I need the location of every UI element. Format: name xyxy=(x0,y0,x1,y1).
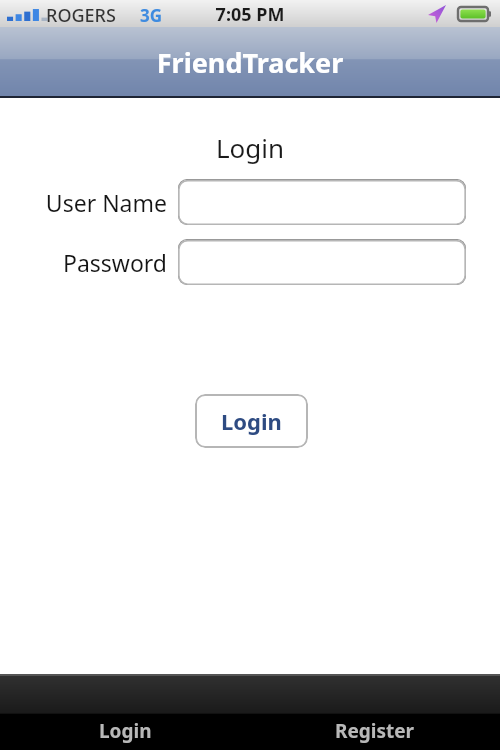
staticText: FriendTracker xyxy=(0,44,500,81)
button[interactable]: Register xyxy=(250,676,500,750)
staticText: Login xyxy=(221,406,282,436)
staticText: Register xyxy=(335,718,415,744)
button[interactable] xyxy=(178,239,466,285)
staticText: User Name xyxy=(45,187,167,218)
other: Battery xyxy=(458,7,491,21)
staticText: 3G xyxy=(140,4,163,27)
button[interactable]: Login xyxy=(0,676,250,750)
other: Location xyxy=(428,5,446,23)
staticText: ROGERS xyxy=(46,3,116,28)
button[interactable] xyxy=(178,179,466,225)
button[interactable]: Login xyxy=(195,394,308,448)
staticText: Password xyxy=(62,247,167,278)
staticText: 7:05 PM xyxy=(0,2,500,27)
staticText: Login xyxy=(99,718,152,744)
staticText: Login xyxy=(0,130,500,165)
